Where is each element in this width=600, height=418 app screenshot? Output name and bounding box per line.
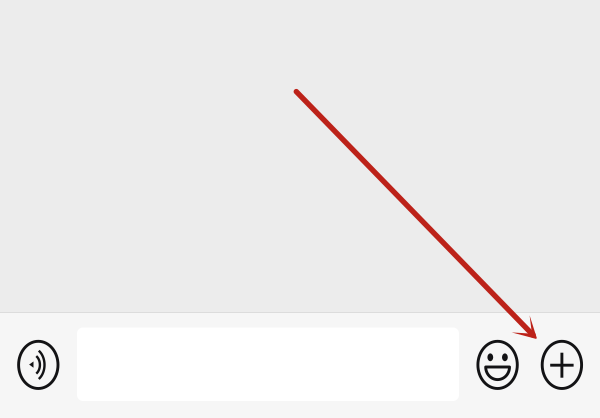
button[interactable]: More apps bbox=[534, 335, 590, 395]
button[interactable]: Record audio message bbox=[10, 335, 66, 395]
button[interactable]: Emoji bbox=[470, 335, 526, 395]
